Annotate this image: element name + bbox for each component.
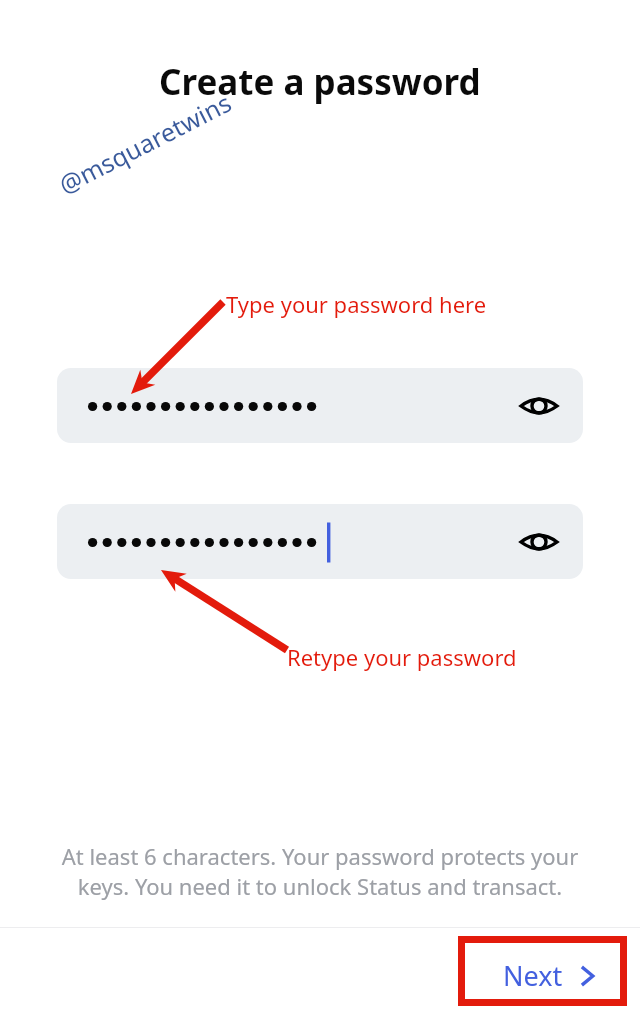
staticText: At least 6 characters. Your password pro… (36, 841, 604, 902)
button[interactable]: Show password (517, 384, 561, 428)
staticText: Create a password (159, 58, 481, 106)
staticText: @msquaretwins (53, 85, 237, 201)
button[interactable]: Show password (517, 520, 561, 564)
staticText: Type your password here (226, 289, 487, 319)
staticText: Retype your password (287, 642, 517, 672)
button[interactable]: Password (57, 368, 583, 443)
button[interactable]: Confirm password (57, 504, 583, 579)
staticText: Next (503, 957, 563, 994)
button[interactable]: Next (495, 947, 606, 1004)
